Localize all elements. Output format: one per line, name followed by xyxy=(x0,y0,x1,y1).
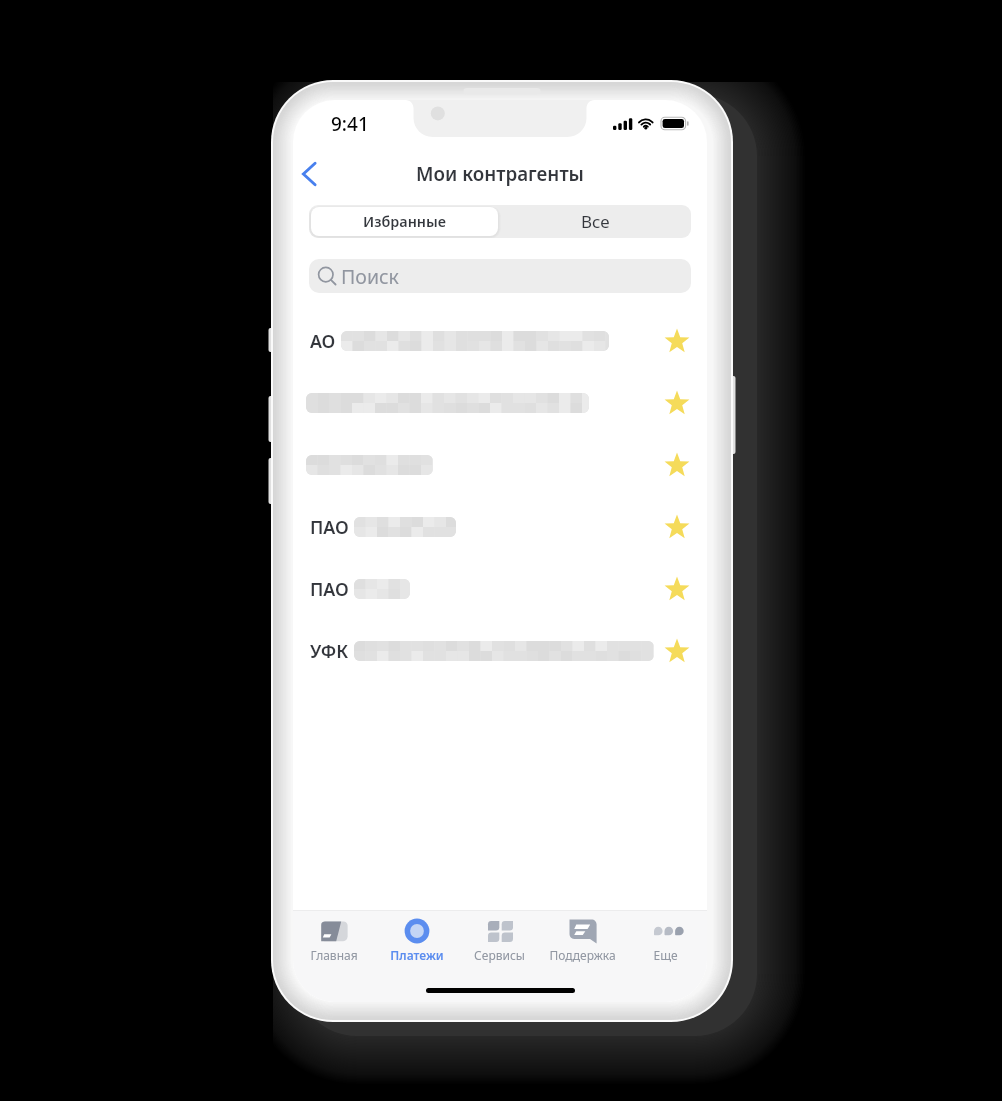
staticText: Поиск xyxy=(341,263,399,290)
button[interactable]: АО xyxy=(293,310,707,372)
staticText: Сервисы xyxy=(474,947,525,963)
button[interactable]: Поиск xyxy=(309,259,691,293)
staticText: АО xyxy=(310,329,336,353)
button[interactable]: УФК xyxy=(293,620,707,682)
button[interactable]: Favourite xyxy=(661,449,693,481)
button[interactable]: Favourite xyxy=(661,387,693,419)
staticText: УФК xyxy=(310,639,349,663)
button[interactable]: Favourite xyxy=(661,511,693,543)
staticText: Еще xyxy=(653,947,678,963)
button[interactable]: Favourite xyxy=(661,325,693,357)
staticText: 9:41 xyxy=(331,111,369,137)
staticText: Мои контрагенты xyxy=(416,161,584,187)
button[interactable]: Все xyxy=(500,205,691,238)
staticText: ПАО xyxy=(310,577,349,601)
button[interactable]: ПАО xyxy=(293,558,707,620)
button[interactable]: Back xyxy=(293,152,332,196)
staticText: ПАО xyxy=(310,515,349,539)
button[interactable]: Избранные xyxy=(311,207,498,236)
staticText: Все xyxy=(581,210,610,233)
button[interactable]: Favourite xyxy=(661,635,693,667)
button[interactable]: Сервисы xyxy=(458,911,541,977)
button[interactable]: ПАО xyxy=(293,496,707,558)
staticText: Платежи xyxy=(390,947,444,963)
button[interactable]: Еще xyxy=(624,911,707,977)
button[interactable]: Favourite xyxy=(293,434,707,496)
button[interactable]: Платежи xyxy=(375,911,458,977)
staticText: Избранные xyxy=(363,212,447,232)
button[interactable]: Главная xyxy=(293,911,375,977)
button[interactable]: Поддержка xyxy=(541,911,624,977)
button[interactable]: Favourite xyxy=(293,372,707,434)
button[interactable]: Favourite xyxy=(661,573,693,605)
staticText: Поддержка xyxy=(549,947,616,963)
staticText: Главная xyxy=(310,947,358,963)
